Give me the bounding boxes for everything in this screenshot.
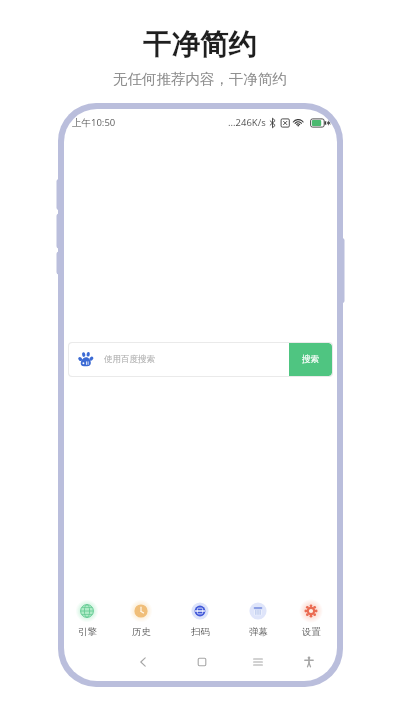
button[interactable]: 扫码 [180, 598, 220, 642]
button[interactable]: 历史 [121, 598, 161, 642]
button[interactable]: 弹幕 [238, 598, 278, 642]
staticText: 扫码 [191, 626, 210, 638]
staticText: 搜索 [302, 354, 319, 365]
button[interactable]: 引擎 [67, 598, 107, 642]
button[interactable]: 设置 [291, 598, 331, 642]
button[interactable]: Home [188, 648, 216, 676]
button[interactable]: 使用百度搜索 [69, 343, 289, 376]
button[interactable]: Recent apps [244, 648, 272, 676]
staticText: 设置 [302, 626, 321, 638]
staticText: …246K/s [228, 116, 266, 129]
staticText: 弹幕 [249, 626, 268, 638]
button[interactable]: 搜索 [289, 343, 332, 376]
staticText: 引擎 [78, 626, 97, 638]
staticText: 历史 [132, 626, 151, 638]
staticText: 无任何推荐内容，干净简约 [113, 70, 287, 88]
button[interactable]: Back [129, 648, 157, 676]
staticText: 干净简约 [143, 27, 257, 62]
staticText: 使用百度搜索 [104, 354, 155, 365]
button[interactable]: Accessibility [295, 648, 323, 676]
staticText: 上午10:50 [72, 116, 116, 129]
